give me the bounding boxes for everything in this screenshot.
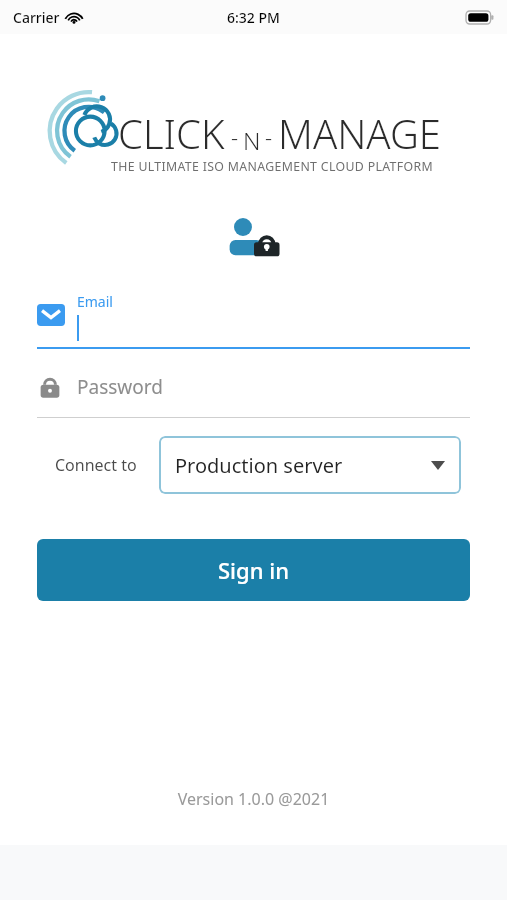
button[interactable]: Production server bbox=[159, 436, 461, 494]
button[interactable]: Sign in bbox=[37, 539, 470, 601]
staticText: - bbox=[265, 122, 273, 152]
staticText: 6:32 PM bbox=[227, 8, 280, 27]
staticText: Production server bbox=[175, 452, 431, 479]
staticText: THE ULTIMATE ISO MANAGEMENT CLOUD PLATFO… bbox=[111, 158, 433, 175]
staticText: Carrier bbox=[13, 8, 60, 27]
staticText: Version 1.0.0 @2021 bbox=[0, 788, 507, 810]
button[interactable]: Email bbox=[37, 292, 470, 349]
staticText: Email bbox=[77, 292, 113, 311]
other: Password bbox=[37, 373, 63, 401]
staticText: - bbox=[231, 122, 239, 152]
other: Email bbox=[37, 304, 65, 326]
staticText: N bbox=[243, 124, 261, 157]
staticText: CLICK bbox=[118, 106, 225, 160]
staticText: Connect to bbox=[55, 454, 137, 476]
staticText: Password bbox=[77, 374, 163, 400]
staticText: MANAGE bbox=[278, 106, 441, 160]
staticText: Sign in bbox=[218, 555, 289, 585]
button[interactable]: Password bbox=[37, 373, 470, 418]
